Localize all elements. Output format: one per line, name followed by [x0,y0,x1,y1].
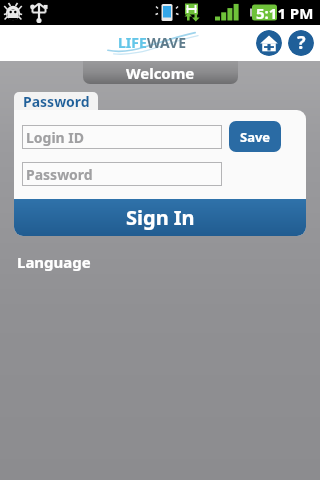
staticText: Language [17,252,91,272]
staticText: Password [23,92,90,110]
button[interactable]: Home [256,30,282,56]
button[interactable]: Help [288,30,314,56]
staticText: Save [240,128,271,146]
staticText: Welcome [126,63,195,83]
staticText: 5:11 PM [256,3,314,23]
staticText: ? [297,30,306,55]
staticText: WAVE [147,33,187,52]
button[interactable]: Language [17,252,91,272]
staticText: LIFE [118,33,147,52]
staticText: Password [26,165,93,184]
button[interactable]: Sign In [14,199,306,236]
button[interactable]: Save [229,121,281,152]
button[interactable]: Password [14,92,98,110]
button[interactable]: Password [22,162,222,186]
button[interactable]: Login ID [22,125,222,149]
button[interactable]: Welcome [83,61,238,84]
staticText: Login ID [26,128,85,147]
staticText: Sign In [126,204,195,231]
